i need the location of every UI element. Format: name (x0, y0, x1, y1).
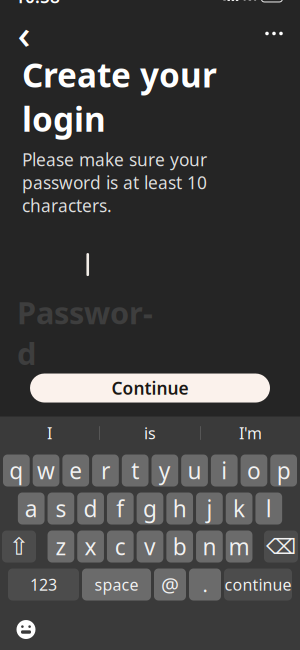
staticText: m (229, 531, 250, 562)
button[interactable]: space (82, 568, 151, 600)
button[interactable]: More options (262, 20, 286, 46)
staticText: Create your login (22, 52, 217, 141)
button[interactable]: continue (224, 568, 292, 600)
staticText: h (173, 493, 187, 524)
button[interactable]: u (181, 454, 208, 486)
staticText: a (25, 493, 38, 524)
button[interactable]: x (77, 530, 104, 562)
button[interactable]: v (137, 530, 163, 562)
staticText: space (94, 574, 138, 595)
staticText: c (115, 531, 126, 562)
staticText: s (55, 493, 66, 524)
staticText: Continue (111, 376, 188, 399)
button[interactable]: t (122, 454, 148, 486)
button[interactable]: Delete (264, 530, 298, 562)
staticText: I'm (239, 422, 262, 444)
button[interactable]: s (48, 492, 74, 524)
button[interactable]: is (100, 418, 200, 448)
button[interactable]: Shift (2, 530, 36, 562)
button[interactable]: Emoji keyboard (11, 616, 41, 642)
staticText: 10:58 (15, 0, 60, 8)
button[interactable]: k (226, 492, 252, 524)
button[interactable]: a (18, 492, 45, 524)
button[interactable]: Back (14, 20, 34, 46)
button[interactable]: c (107, 530, 134, 562)
button[interactable]: r (92, 454, 119, 486)
staticText: y (159, 455, 171, 486)
button[interactable]: w (33, 454, 59, 486)
staticText: is (144, 422, 156, 444)
button[interactable]: n (196, 530, 223, 562)
staticText: e (69, 455, 82, 486)
button[interactable]: m (226, 530, 252, 562)
staticText: z (55, 531, 66, 562)
button[interactable]: Continue (30, 373, 270, 402)
staticText: n (202, 531, 216, 562)
staticText: l (266, 493, 272, 524)
staticText: @ (161, 571, 179, 598)
button[interactable]: o (241, 454, 267, 486)
staticText: Please make sure your password is at lea… (22, 148, 207, 217)
staticText: q (9, 455, 23, 486)
staticText: r (101, 455, 110, 486)
button[interactable]: q (3, 454, 30, 486)
staticText: ⌫ (266, 534, 296, 559)
staticText: v (144, 531, 156, 562)
button[interactable]: j (196, 492, 223, 524)
staticText: p (277, 455, 291, 486)
staticText: t (131, 455, 139, 486)
staticText: b (173, 531, 187, 562)
staticText: . (202, 571, 207, 598)
button[interactable]: f (107, 492, 134, 524)
button[interactable]: p (270, 454, 297, 486)
staticText: ⇧ (9, 533, 29, 560)
button[interactable]: I (0, 418, 99, 448)
button[interactable]: b (166, 530, 193, 562)
staticText: f (116, 493, 124, 524)
staticText: k (233, 493, 245, 524)
staticText: 123 (30, 574, 57, 595)
staticText: g (143, 493, 157, 524)
button[interactable]: I'm (201, 418, 300, 448)
button[interactable]: g (137, 492, 163, 524)
button[interactable]: d (77, 492, 104, 524)
button[interactable]: y (151, 454, 178, 486)
staticText: j (206, 493, 212, 524)
staticText: ‹ (17, 7, 30, 60)
staticText: continue (224, 574, 291, 595)
staticText: d (84, 493, 98, 524)
staticText: I (47, 422, 52, 444)
staticText: o (247, 455, 261, 486)
staticText: w (37, 455, 55, 486)
staticText: Password (17, 292, 153, 373)
button[interactable]: h (166, 492, 193, 524)
button[interactable]: l (255, 492, 282, 524)
button[interactable]: @ (154, 568, 186, 600)
staticText: x (85, 531, 97, 562)
button[interactable]: . (189, 568, 221, 600)
button[interactable]: e (62, 454, 89, 486)
button[interactable]: i (211, 454, 238, 486)
staticText: u (188, 455, 202, 486)
button[interactable]: 123 (8, 568, 79, 600)
staticText: i (221, 455, 227, 486)
button[interactable]: z (48, 530, 74, 562)
